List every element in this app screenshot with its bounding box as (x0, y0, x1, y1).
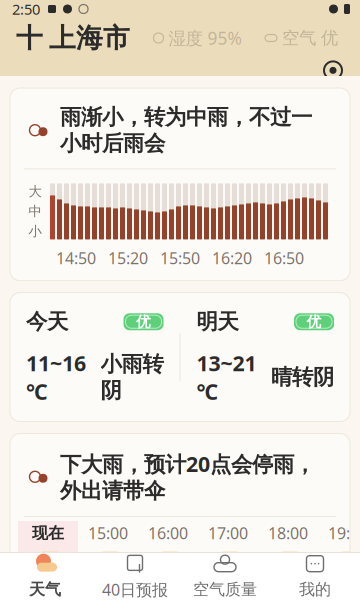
button[interactable]: 天气 (0, 547, 90, 600)
button[interactable]: 设置 (318, 58, 348, 82)
staticText: 湿度 95% (168, 26, 241, 49)
staticText: 天气 (29, 580, 61, 599)
button[interactable]: 空气质量 (180, 547, 270, 600)
staticText: 空气质量 (193, 580, 257, 599)
button[interactable]: 我的 (270, 547, 360, 600)
button[interactable]: 湿度 95% (153, 20, 241, 55)
button[interactable]: 明天 (180, 293, 350, 422)
staticText: 16:20 (212, 247, 252, 269)
staticText: 18:00 (268, 522, 308, 544)
button[interactable]: 十 (0, 18, 130, 58)
staticText: 13~21℃ (196, 349, 256, 406)
staticText: 17:00 (208, 522, 248, 544)
staticText: 雨渐小，转为中雨，不过一小时后雨会 (60, 104, 312, 156)
staticText: 11~16℃ (26, 349, 86, 406)
staticText: 十 (16, 22, 43, 54)
staticText: 16:00 (148, 522, 188, 544)
staticText: 2:50 (12, 0, 40, 19)
staticText: 小雨转阴 (100, 351, 163, 403)
staticText: 优 (306, 313, 321, 331)
staticText: 小 (28, 223, 41, 239)
staticText: 15:00 (88, 522, 128, 544)
staticText: 空气 优 (282, 27, 338, 49)
staticText: 优 (136, 313, 151, 331)
staticText: 14:50 (56, 247, 96, 269)
staticText: 16:50 (264, 247, 304, 269)
button[interactable]: 空气 优 (265, 21, 360, 55)
staticText: 上海市 (49, 22, 130, 54)
staticText: 大 (28, 183, 41, 200)
staticText: 15:20 (108, 247, 148, 269)
staticText: 大雨 (29, 585, 67, 600)
staticText: 中雨 (149, 585, 187, 600)
staticText: 中雨 (209, 585, 247, 600)
staticText: 40日预报 (102, 579, 168, 600)
staticText: 今天 (26, 309, 68, 335)
staticText: 中 (28, 203, 41, 220)
staticText: 19:00 (328, 522, 360, 544)
button[interactable]: 40日预报 (90, 546, 180, 600)
staticText: 小雨 (329, 585, 360, 600)
staticText: 现在 (32, 523, 64, 543)
staticText: 下大雨，预计20点会停雨，外出请带伞 (60, 449, 315, 504)
staticText: 中雨 (89, 585, 127, 600)
staticText: 明天 (196, 309, 238, 335)
button[interactable]: 今天 (10, 293, 179, 422)
staticText: 中雨 (269, 585, 307, 600)
staticText: 晴转阴 (271, 364, 334, 390)
staticText: 15:50 (160, 247, 200, 269)
staticText: 我的 (299, 580, 331, 599)
